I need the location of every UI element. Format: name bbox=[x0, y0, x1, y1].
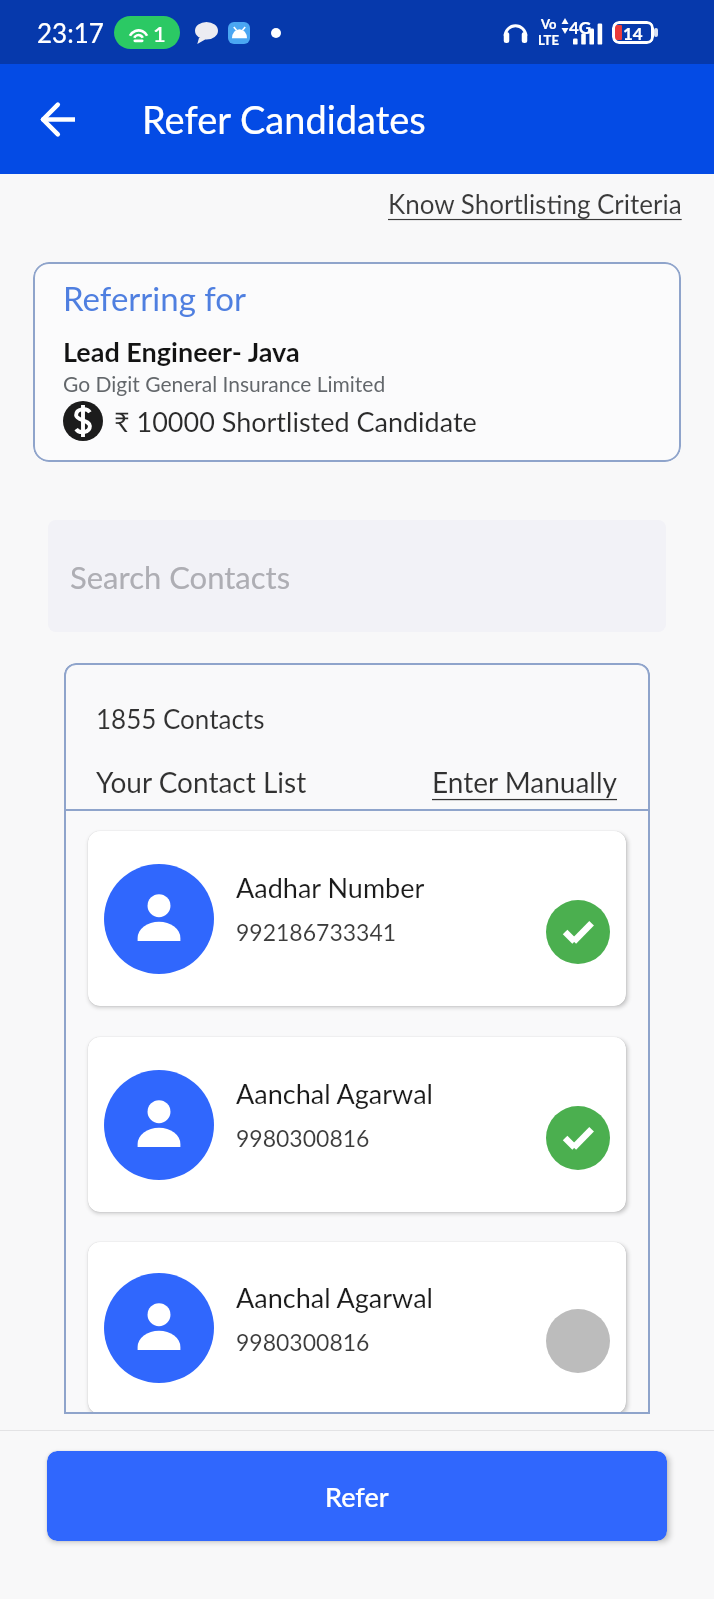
staticText: Refer Candidates bbox=[142, 96, 426, 142]
button[interactable]: Aanchal Agarwal bbox=[88, 1242, 626, 1414]
staticText: Lead Engineer- Java bbox=[63, 335, 300, 367]
button[interactable]: Selected bbox=[546, 900, 610, 964]
button[interactable]: Your Contact List bbox=[96, 765, 307, 799]
staticText: ₹ 10000 Shortlisted Candidate bbox=[114, 405, 477, 437]
staticText: Aanchal Agarwal bbox=[236, 1077, 433, 1109]
button[interactable]: Refer bbox=[47, 1451, 667, 1541]
staticText: 23:17 bbox=[37, 17, 104, 48]
staticText: Search Contacts bbox=[70, 558, 291, 595]
button[interactable]: Aanchal Agarwal bbox=[88, 1037, 626, 1212]
staticText: 9980300816 bbox=[236, 1328, 370, 1356]
staticText: 9980300816 bbox=[236, 1124, 370, 1152]
button[interactable]: Referring for bbox=[33, 262, 681, 462]
button[interactable]: Know Shortlisting Criteria bbox=[388, 184, 714, 223]
button[interactable]: Selected bbox=[546, 1106, 610, 1170]
button[interactable]: Back bbox=[28, 89, 88, 149]
staticText: Enter Manually bbox=[432, 765, 618, 799]
staticText: Referring for bbox=[63, 278, 247, 318]
staticText: Aanchal Agarwal bbox=[236, 1281, 433, 1313]
staticText: Know Shortlisting Criteria bbox=[388, 188, 682, 219]
staticText: 1 bbox=[153, 20, 166, 46]
staticText: 992186733341 bbox=[236, 918, 397, 946]
staticText: LTE bbox=[538, 32, 559, 48]
staticText: 14 bbox=[623, 23, 643, 43]
button[interactable]: Aadhar Number bbox=[88, 831, 626, 1006]
button[interactable]: Search Contacts bbox=[48, 520, 666, 632]
staticText: Vo bbox=[541, 16, 557, 32]
button[interactable]: Enter Manually bbox=[432, 765, 618, 799]
staticText: Your Contact List bbox=[96, 765, 307, 799]
staticText: 1855 Contacts bbox=[96, 703, 265, 734]
staticText: 4G bbox=[569, 17, 592, 37]
button[interactable]: Not selected bbox=[546, 1309, 610, 1373]
staticText: Aadhar Number bbox=[236, 871, 425, 903]
staticText: Refer bbox=[325, 1480, 389, 1512]
staticText: Go Digit General Insurance Limited bbox=[63, 371, 386, 396]
